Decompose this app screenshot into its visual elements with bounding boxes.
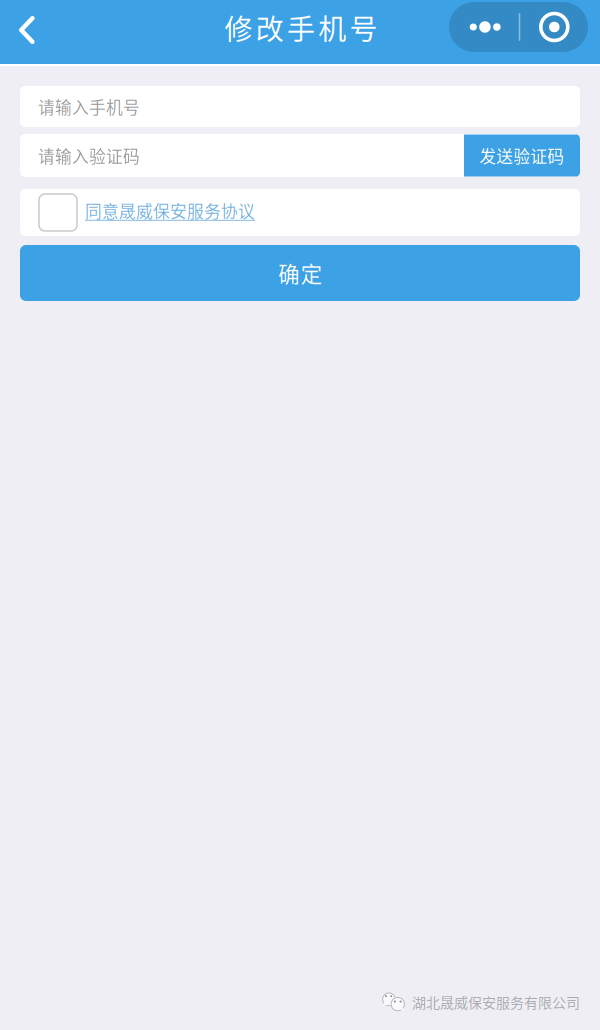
staticText: 湖北晟威保安服务有限公司 (412, 992, 580, 1012)
button[interactable]: More options (449, 2, 588, 52)
button[interactable]: 同意晟威保安服务协议 (20, 189, 580, 245)
staticText: 同意晟威保安服务协议 (85, 198, 255, 222)
button[interactable]: 发送验证码 (464, 134, 580, 176)
staticText: 请输入手机号 (38, 94, 140, 118)
button[interactable]: Back (0, 0, 50, 54)
staticText: 发送验证码 (479, 143, 564, 167)
staticText: 确定 (278, 258, 322, 288)
staticText: 请输入验证码 (38, 143, 140, 167)
staticText: 修改手机号 (224, 7, 378, 48)
button[interactable]: 确定 (20, 245, 580, 301)
